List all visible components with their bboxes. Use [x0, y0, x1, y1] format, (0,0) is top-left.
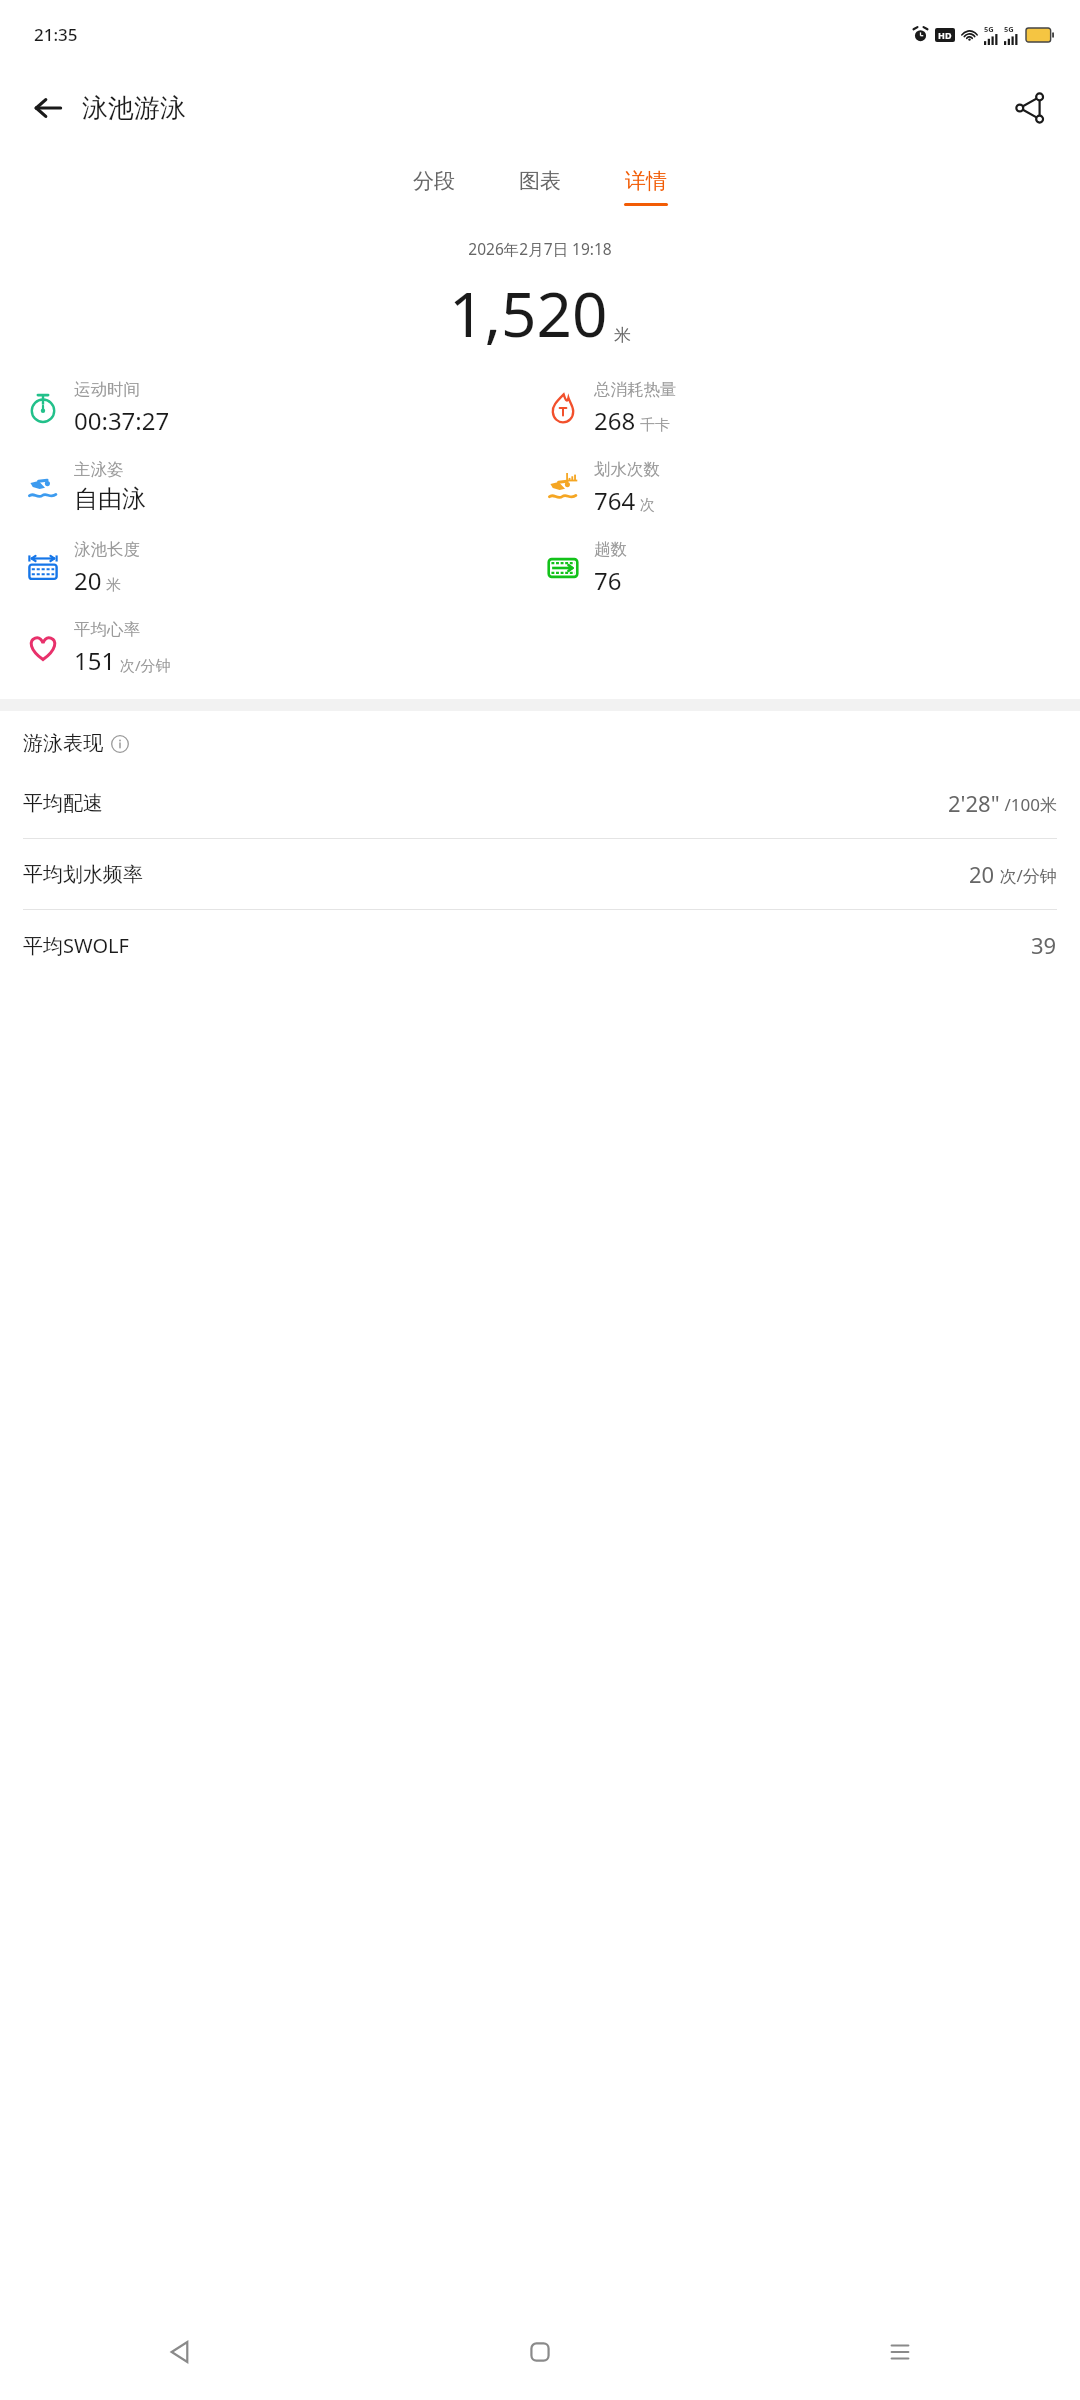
button[interactable]: 图表	[508, 162, 572, 212]
staticText: 平均划水频率	[23, 862, 143, 887]
button[interactable]: 说明	[111, 735, 129, 753]
staticText: 运动时间	[74, 379, 140, 400]
button[interactable]: 运动时间	[26, 379, 540, 437]
staticText: 2'28"	[948, 788, 1000, 818]
staticText: 图表	[519, 168, 561, 194]
button[interactable]: 分段	[402, 162, 466, 212]
staticText: 划水次数	[594, 459, 660, 480]
staticText: 平均配速	[23, 791, 103, 816]
button[interactable]: 趟数	[546, 539, 1080, 597]
button[interactable]: 最近任务	[720, 2304, 1080, 2400]
staticText: 00:37:27	[74, 404, 170, 437]
staticText: 268	[594, 404, 636, 437]
staticText: 平均SWOLF	[23, 932, 129, 959]
button[interactable]: 泳池长度	[26, 539, 540, 597]
staticText: 泳池游泳	[82, 92, 186, 125]
staticText: 39	[1031, 930, 1057, 960]
staticText: 分段	[413, 168, 455, 194]
staticText: 20	[969, 859, 995, 889]
staticText: 千卡	[640, 416, 670, 435]
staticText: 米	[106, 576, 121, 595]
staticText: 次/分钟	[995, 864, 1057, 887]
staticText: 主泳姿	[74, 459, 124, 480]
staticText: HD	[938, 29, 952, 41]
staticText: 游泳表现	[23, 731, 103, 756]
button[interactable]: 主页	[360, 2304, 720, 2400]
staticText: 趟数	[594, 539, 627, 560]
button[interactable]: 分享	[1004, 82, 1056, 134]
staticText: 自由泳	[74, 484, 146, 514]
button[interactable]: 平均划水频率	[0, 839, 1080, 910]
staticText: /100米	[1000, 793, 1057, 816]
button[interactable]: 平均SWOLF	[0, 910, 1080, 980]
staticText: 21:35	[34, 23, 78, 46]
button[interactable]: 总消耗热量	[546, 379, 1080, 437]
button[interactable]: 详情	[614, 162, 678, 212]
button[interactable]: 返回	[0, 2304, 360, 2400]
staticText: 泳池长度	[74, 539, 140, 560]
staticText: 总消耗热量	[594, 379, 677, 400]
button[interactable]: 划水次数	[546, 459, 1080, 517]
staticText: 平均心率	[74, 619, 140, 640]
staticText: 1,520	[449, 271, 608, 355]
staticText: 764	[594, 484, 636, 517]
staticText: 5G	[1004, 24, 1014, 34]
button[interactable]: 平均配速	[0, 768, 1080, 839]
staticText: 20	[74, 564, 102, 597]
staticText: 次/分钟	[120, 655, 171, 675]
staticText: 米	[614, 325, 631, 346]
staticText: 2026年2月7日 19:18	[0, 238, 1080, 259]
staticText: 76	[594, 564, 622, 597]
button[interactable]: 主泳姿	[26, 459, 540, 514]
button[interactable]: 返回	[24, 84, 72, 132]
staticText: 151	[74, 644, 116, 677]
staticText: 详情	[625, 168, 667, 194]
staticText: 次	[640, 496, 655, 515]
button[interactable]: 平均心率	[26, 619, 540, 677]
staticText: 5G	[984, 24, 994, 34]
